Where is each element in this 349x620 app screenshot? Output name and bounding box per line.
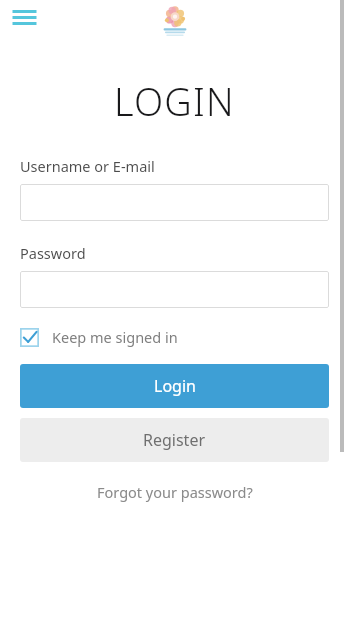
button[interactable]: Text input field [20, 184, 329, 221]
button[interactable]: Forgot your password? [89, 478, 261, 506]
staticText: Password [20, 243, 86, 263]
staticText: Keep me signed in [52, 327, 178, 347]
button[interactable]: Register [20, 418, 329, 462]
staticText: Login [154, 375, 196, 397]
button[interactable]: Keep me signed in [20, 324, 178, 350]
staticText: Forgot your password? [97, 482, 253, 502]
staticText: Register [143, 429, 206, 451]
button[interactable]: Text input field [20, 271, 329, 308]
staticText: Username or E-mail [20, 156, 155, 176]
button[interactable]: Login [20, 364, 329, 408]
button[interactable]: Open navigation menu [9, 5, 39, 29]
staticText: LOGIN [114, 75, 235, 127]
button[interactable]: App logo, go home [160, 3, 190, 39]
